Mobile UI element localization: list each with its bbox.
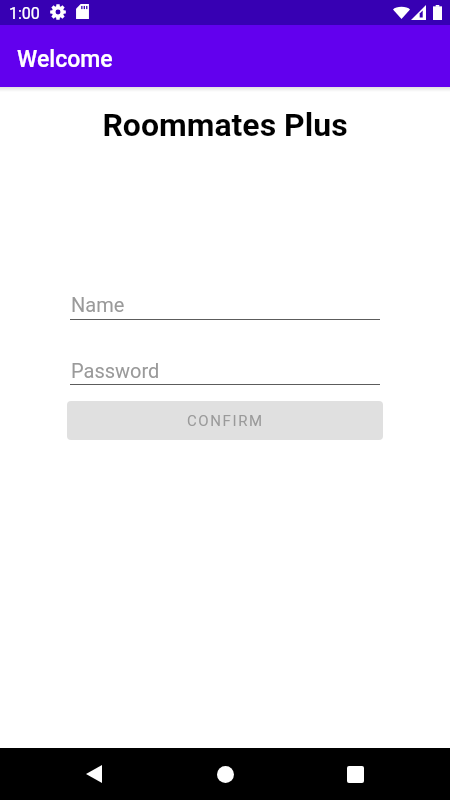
button[interactable]: Back <box>70 748 118 800</box>
staticText: Welcome <box>17 46 113 73</box>
staticText: 1:00 <box>9 4 40 23</box>
button[interactable]: Recents <box>331 748 379 800</box>
button[interactable]: CONFIRM <box>67 401 383 440</box>
staticText: Password <box>71 359 160 382</box>
staticText: Roommates Plus <box>0 106 450 144</box>
button[interactable]: Password <box>70 355 380 385</box>
button[interactable]: Name <box>70 290 380 320</box>
staticText: CONFIRM <box>187 412 264 430</box>
staticText: Name <box>71 293 125 316</box>
button[interactable]: Home <box>201 748 249 800</box>
